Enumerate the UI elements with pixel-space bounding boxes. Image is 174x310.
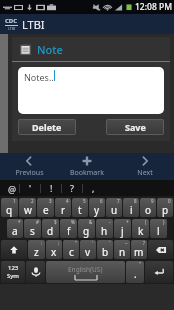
staticText: ~ bbox=[125, 240, 128, 246]
button[interactable]: & bbox=[78, 219, 95, 238]
button[interactable]: 3 bbox=[37, 198, 54, 217]
button[interactable]: ! bbox=[41, 181, 61, 195]
staticText: 4 bbox=[66, 198, 69, 204]
button[interactable]: * bbox=[7, 219, 23, 238]
button[interactable]: " bbox=[126, 261, 144, 283]
staticText: b bbox=[102, 245, 109, 259]
staticText: % bbox=[71, 219, 75, 225]
button[interactable]: : bbox=[28, 240, 45, 259]
staticText: 3 bbox=[49, 198, 52, 204]
staticText: * bbox=[18, 219, 21, 225]
staticText: ? bbox=[143, 240, 145, 246]
button[interactable]: + bbox=[114, 219, 131, 238]
button[interactable]: ) bbox=[150, 219, 167, 238]
staticText: 2 bbox=[31, 198, 34, 204]
staticText: LTBI bbox=[8, 26, 16, 31]
staticText: , bbox=[92, 182, 95, 194]
button[interactable]: Delete bbox=[18, 119, 76, 135]
staticText: x bbox=[51, 245, 57, 259]
staticText: English(US) bbox=[68, 265, 103, 274]
staticText: ! bbox=[50, 182, 53, 194]
staticText: Delete bbox=[32, 121, 62, 133]
button[interactable]: 2 bbox=[19, 198, 36, 217]
button[interactable]: ? bbox=[62, 181, 82, 195]
button[interactable]: Next bbox=[116, 153, 174, 180]
staticText: k bbox=[138, 224, 144, 238]
staticText: t bbox=[78, 203, 82, 217]
staticText: 0 bbox=[168, 198, 171, 204]
staticText: g bbox=[83, 224, 90, 238]
staticText: - bbox=[109, 219, 111, 225]
staticText: z bbox=[34, 245, 39, 259]
staticText: c bbox=[69, 245, 74, 259]
staticText: Notes.. bbox=[24, 71, 54, 83]
button[interactable]: Previous bbox=[0, 153, 58, 180]
button[interactable]: Space bbox=[46, 261, 125, 283]
staticText: . bbox=[134, 267, 137, 281]
staticText: s bbox=[30, 224, 35, 238]
button[interactable]: 7 bbox=[106, 198, 122, 217]
staticText: q bbox=[6, 203, 13, 217]
button[interactable]: ' bbox=[20, 181, 40, 195]
staticText: LTBI bbox=[22, 17, 45, 32]
button[interactable]: , bbox=[83, 181, 103, 195]
staticText: n bbox=[119, 245, 126, 259]
staticText: p bbox=[162, 203, 169, 217]
staticText: 12:08 PM bbox=[135, 1, 172, 13]
button[interactable]: 5 bbox=[72, 198, 88, 217]
button[interactable]: $ bbox=[42, 219, 59, 238]
staticText: & bbox=[89, 219, 93, 225]
button[interactable]: # bbox=[24, 219, 41, 238]
button[interactable]: 123 bbox=[1, 261, 25, 283]
button[interactable]: Backspace bbox=[148, 240, 173, 259]
button[interactable]: " bbox=[63, 240, 79, 259]
button[interactable]: ( bbox=[132, 219, 149, 238]
button[interactable]: - bbox=[96, 219, 113, 238]
staticText: 123 bbox=[8, 264, 19, 272]
button[interactable]: @ bbox=[6, 182, 19, 195]
staticText: r bbox=[61, 203, 66, 217]
staticText: o bbox=[145, 203, 152, 217]
button[interactable]: Voice input bbox=[26, 261, 45, 283]
button[interactable]: Notes.. bbox=[18, 67, 164, 114]
staticText: " bbox=[75, 240, 77, 246]
button[interactable]: ; bbox=[46, 240, 62, 259]
staticText: 5 bbox=[83, 198, 86, 204]
staticText: 6 bbox=[100, 198, 103, 204]
staticText: $ bbox=[54, 219, 57, 225]
staticText: ( bbox=[145, 219, 147, 225]
staticText: w bbox=[24, 203, 32, 217]
staticText: @ bbox=[8, 183, 17, 195]
button[interactable]: ? bbox=[131, 240, 147, 259]
staticText: ' bbox=[92, 240, 94, 246]
staticText: v bbox=[85, 245, 91, 259]
staticText: ; bbox=[58, 240, 60, 246]
staticText: Bookmark bbox=[70, 168, 104, 178]
button[interactable]: Enter bbox=[145, 261, 173, 283]
button[interactable]: 0 bbox=[157, 198, 173, 217]
button[interactable]: Bookmark bbox=[58, 153, 116, 180]
staticText: ' bbox=[29, 182, 32, 194]
button[interactable]: 8 bbox=[123, 198, 139, 217]
staticText: u bbox=[111, 203, 118, 217]
button[interactable]: Save bbox=[106, 119, 164, 135]
button[interactable]: % bbox=[60, 219, 77, 238]
staticText: ` bbox=[109, 240, 111, 246]
button[interactable]: 1 bbox=[1, 198, 18, 217]
button[interactable]: 9 bbox=[140, 198, 156, 217]
staticText: l bbox=[157, 224, 160, 238]
staticText: Note bbox=[37, 42, 63, 57]
staticText: " bbox=[139, 261, 142, 268]
staticText: m bbox=[134, 245, 144, 259]
button[interactable]: ~ bbox=[114, 240, 130, 259]
button[interactable]: 6 bbox=[89, 198, 105, 217]
button[interactable]: ` bbox=[97, 240, 113, 259]
button[interactable]: 4 bbox=[55, 198, 71, 217]
staticText: f bbox=[67, 224, 71, 238]
staticText: i bbox=[130, 203, 133, 217]
staticText: a bbox=[12, 224, 18, 238]
button[interactable]: ' bbox=[80, 240, 96, 259]
staticText: 7 bbox=[117, 198, 120, 204]
button[interactable]: Shift bbox=[1, 240, 27, 259]
staticText: h bbox=[101, 224, 108, 238]
